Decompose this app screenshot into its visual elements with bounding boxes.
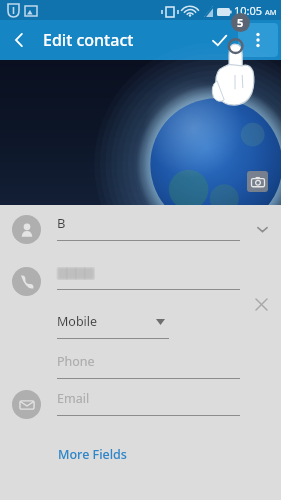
staticText: 5 bbox=[237, 15, 244, 30]
button[interactable]: Expand name fields bbox=[248, 215, 276, 243]
staticText: Edit contact bbox=[43, 29, 134, 51]
button[interactable]: Phone bbox=[57, 353, 240, 379]
button[interactable]: Clear phone number bbox=[248, 291, 274, 317]
staticText: Phone bbox=[57, 353, 95, 370]
button[interactable]: B bbox=[0, 205, 281, 253]
button[interactable]: Mobile bbox=[57, 313, 169, 339]
staticText: B bbox=[57, 214, 66, 232]
button[interactable]: Save contact bbox=[201, 22, 237, 58]
button[interactable]: Change photo bbox=[247, 171, 268, 192]
button[interactable]: More options bbox=[238, 23, 278, 57]
button[interactable]: Back bbox=[0, 21, 38, 59]
staticText: AM bbox=[265, 7, 277, 17]
staticText: Mobile bbox=[57, 313, 98, 330]
button[interactable]: Email bbox=[57, 390, 240, 416]
staticText: More Fields bbox=[58, 446, 127, 463]
staticText: Email bbox=[57, 390, 90, 407]
button[interactable]: More Fields bbox=[57, 443, 128, 466]
staticText: 10:05 bbox=[234, 3, 263, 18]
